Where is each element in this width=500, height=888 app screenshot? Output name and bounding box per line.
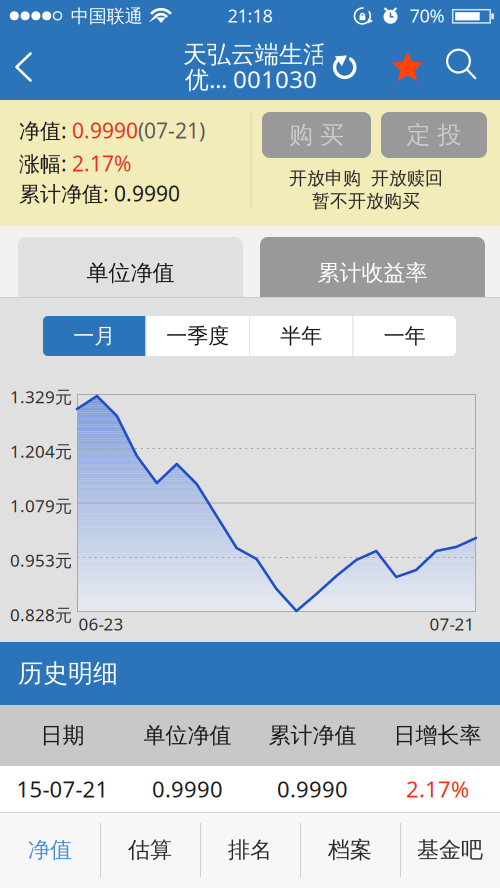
staticText: 累计收益率 (317, 259, 427, 287)
staticText: 06-23 (78, 612, 123, 636)
button[interactable]: Refresh (323, 45, 367, 89)
button[interactable]: 排名 (200, 812, 300, 888)
staticText: 暂不开放购买 (312, 190, 420, 212)
button[interactable]: 一年 (353, 316, 456, 356)
button[interactable]: 购 买 (262, 112, 371, 158)
staticText: 日期 (40, 722, 84, 749)
staticText: 0.953元 (10, 548, 72, 572)
staticText: 定 投 (406, 120, 461, 150)
staticText: 累计净值: (19, 179, 114, 208)
staticText: 2.17% (406, 774, 469, 804)
button[interactable]: 定 投 (381, 112, 487, 158)
staticText: 0.828元 (10, 603, 72, 626)
staticText: 2.17% (72, 149, 131, 178)
button[interactable]: 一季度 (146, 316, 249, 356)
staticText: 购 买 (289, 120, 344, 150)
staticText: 日增长率 (393, 722, 481, 749)
staticText: (07-21) (138, 116, 205, 145)
staticText: 1.329元 (10, 385, 72, 408)
staticText: 15-07-21 (16, 774, 108, 804)
button[interactable]: Back (1, 36, 47, 98)
staticText: 半年 (280, 323, 322, 349)
staticText: 1.079元 (10, 494, 72, 517)
staticText: 累计净值 (268, 722, 356, 749)
staticText: 档案 (328, 836, 372, 864)
staticText: 1.204元 (10, 439, 72, 463)
button[interactable]: 估算 (100, 812, 200, 888)
button[interactable]: 净值 (0, 812, 100, 888)
staticText: 07-21 (429, 612, 474, 636)
staticText: 单位净值 (86, 259, 174, 287)
staticText: 一季度 (166, 323, 229, 349)
staticText: 70% (409, 3, 444, 28)
staticText: 净值: (19, 116, 72, 145)
button[interactable]: 档案 (300, 812, 400, 888)
staticText: 开放申购 开放赎回 (289, 167, 443, 190)
staticText: 0.9990 (72, 116, 138, 145)
staticText: 排名 (228, 836, 272, 864)
button[interactable]: 基金吧 (400, 812, 500, 888)
staticText: 中国联通 (71, 5, 143, 28)
button[interactable]: 一月 (43, 316, 145, 356)
staticText: 优... 001030 (185, 63, 317, 95)
staticText: 历史明细 (18, 658, 118, 689)
staticText: 一月 (73, 323, 115, 349)
staticText: 单位净值 (143, 722, 231, 749)
staticText: 0.9990 (277, 774, 348, 804)
staticText: 0.9990 (152, 774, 223, 804)
button[interactable]: Favorite (384, 44, 430, 90)
button[interactable]: 半年 (250, 316, 352, 356)
staticText: 0.9990 (114, 179, 180, 208)
staticText: 一年 (384, 323, 426, 349)
staticText: 净值 (28, 836, 72, 864)
staticText: 21:18 (227, 3, 272, 28)
staticText: 天弘云端生活 (183, 39, 327, 69)
staticText: 涨幅: (19, 149, 72, 178)
button[interactable]: 单位净值 (18, 237, 243, 309)
staticText: 基金吧 (417, 836, 483, 864)
button[interactable]: 累计收益率 (260, 237, 485, 309)
button[interactable]: Search (439, 43, 483, 87)
staticText: 估算 (128, 836, 172, 864)
